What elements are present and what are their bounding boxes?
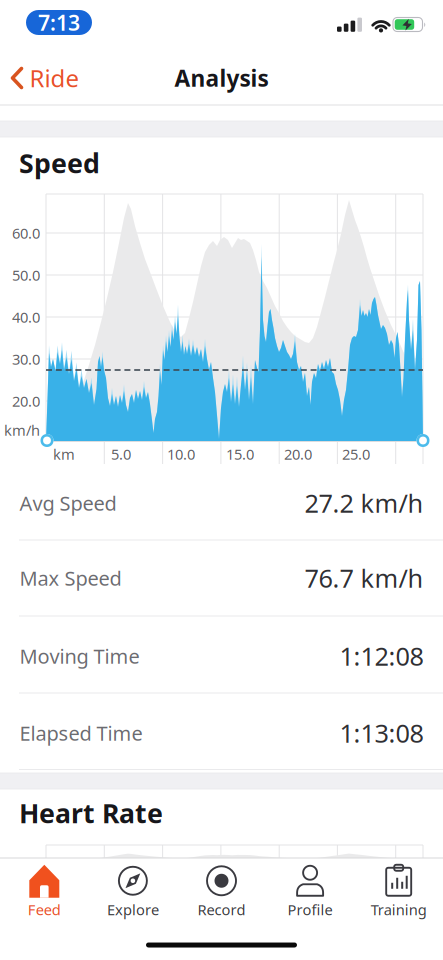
button[interactable]: Profile (268, 862, 352, 920)
staticText: 76.7 km/h (304, 561, 423, 595)
staticText: Speed (19, 145, 100, 181)
staticText: 5.0 (111, 444, 131, 464)
staticText: 50.0 (12, 265, 40, 285)
button[interactable]: Training (357, 862, 441, 920)
staticText: km (53, 444, 75, 464)
staticText: Explore (107, 900, 159, 919)
staticText: 15.0 (226, 444, 254, 464)
staticText: Moving Time (19, 643, 139, 669)
staticText: Heart Rate (19, 795, 163, 831)
staticText: 20.0 (12, 391, 40, 411)
staticText: 10.0 (167, 444, 195, 464)
staticText: Elapsed Time (19, 720, 142, 746)
staticText: Max Speed (19, 565, 121, 591)
staticText: 40.0 (12, 307, 40, 327)
staticText: Feed (28, 900, 61, 919)
staticText: Avg Speed (19, 490, 116, 516)
staticText: Analysis (174, 63, 268, 93)
button[interactable]: Explore (91, 862, 175, 920)
staticText: 30.0 (12, 349, 40, 369)
staticText: 20.0 (284, 444, 312, 464)
staticText: 60.0 (12, 223, 40, 243)
staticText: 1:13:08 (339, 716, 423, 750)
button[interactable]: Back (10, 56, 79, 100)
staticText: 7:13 (38, 8, 80, 37)
staticText: 25.0 (342, 444, 370, 464)
staticText: Profile (288, 900, 333, 919)
staticText: km/h (4, 420, 40, 440)
staticText: 27.2 km/h (304, 486, 423, 520)
staticText: 1:12:08 (339, 639, 423, 673)
staticText: Training (371, 900, 427, 919)
staticText: Record (197, 900, 245, 919)
button[interactable]: Record (179, 862, 263, 920)
staticText: Ride (29, 62, 79, 94)
button[interactable]: Feed (2, 862, 86, 920)
